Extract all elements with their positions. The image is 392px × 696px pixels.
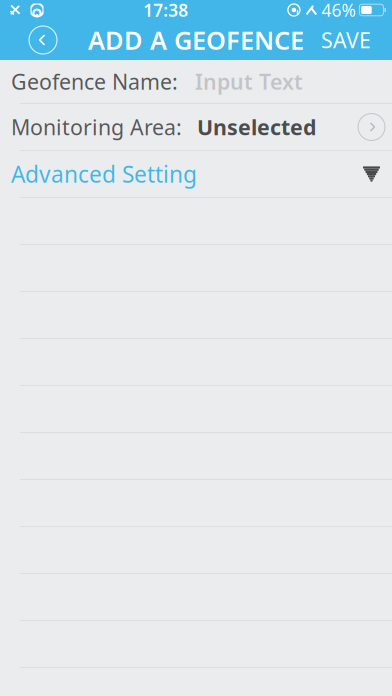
staticText: Unselected	[197, 113, 316, 141]
staticText: SAVE	[321, 26, 371, 54]
button[interactable]: Geofence Name:	[0, 60, 392, 104]
button[interactable]: SAVE	[311, 20, 381, 60]
staticText: Input Text	[195, 67, 303, 96]
button[interactable]: Monitoring Area:	[0, 104, 392, 151]
staticText: Geofence Name:	[11, 67, 178, 96]
staticText: 17:38	[143, 0, 188, 21]
staticText: ADD A GEOFENCE	[88, 23, 304, 57]
staticText: Advanced Setting	[11, 159, 197, 189]
staticText: Monitoring Area:	[11, 113, 182, 141]
staticText: 46%	[321, 0, 355, 21]
button[interactable]: Advanced Setting	[0, 151, 392, 198]
button[interactable]: Back	[21, 20, 65, 60]
